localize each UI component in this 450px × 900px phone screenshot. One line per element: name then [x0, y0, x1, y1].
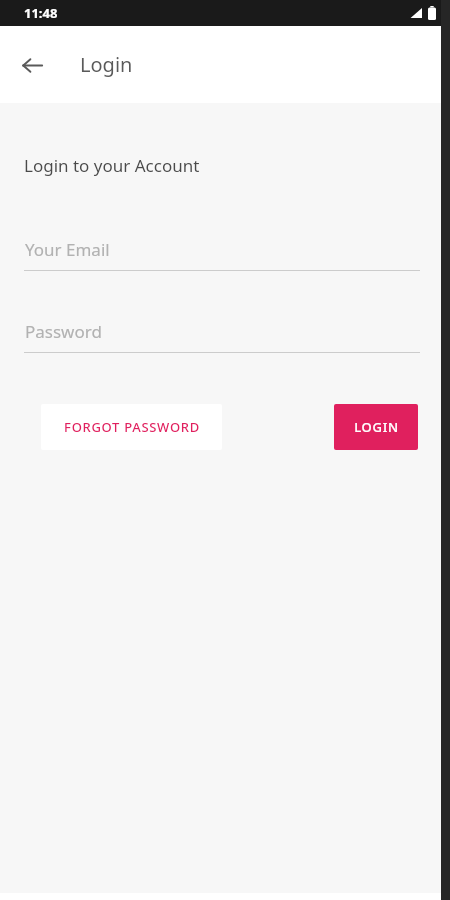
button[interactable]: FORGOT PASSWORD — [41, 404, 222, 450]
staticText: Login — [80, 51, 133, 78]
staticText: FORGOT PASSWORD — [64, 418, 200, 436]
button[interactable]: Back — [8, 41, 56, 89]
staticText: 11:48 — [24, 4, 58, 22]
button[interactable]: Password — [24, 320, 420, 353]
staticText: Login to your Account — [24, 154, 200, 177]
staticText: LOGIN — [354, 418, 399, 436]
staticText: Password — [25, 320, 102, 343]
button[interactable]: LOGIN — [334, 404, 418, 450]
button[interactable]: Your Email — [24, 238, 420, 271]
staticText: Your Email — [25, 238, 110, 261]
